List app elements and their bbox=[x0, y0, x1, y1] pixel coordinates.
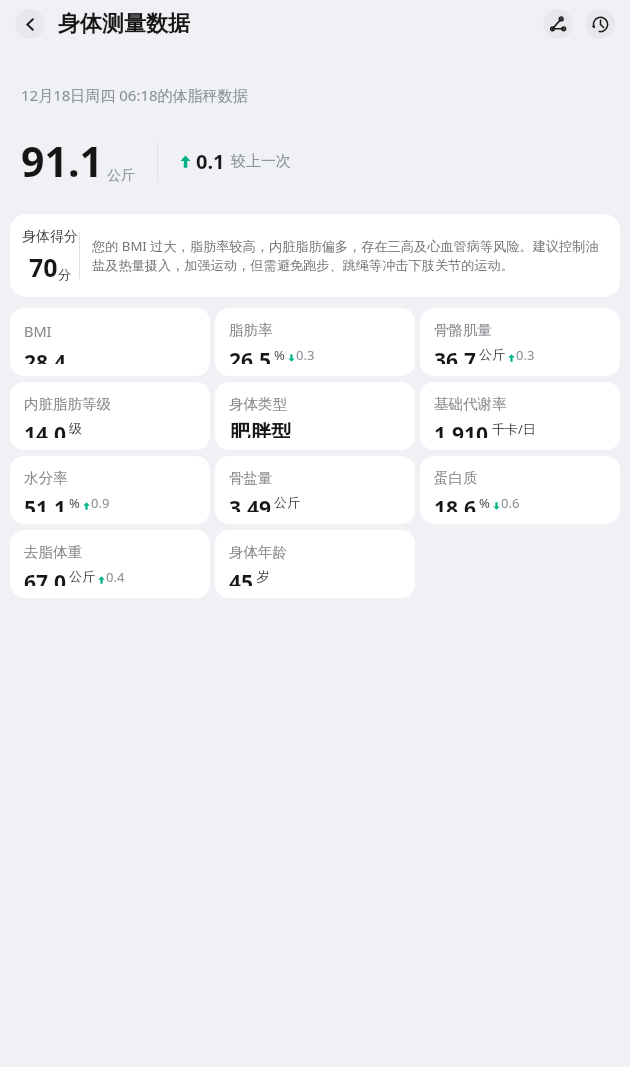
staticText: 分 bbox=[58, 266, 71, 282]
staticText: 基础代谢率 bbox=[434, 395, 507, 413]
staticText: 千卡/日 bbox=[492, 420, 536, 436]
staticText: 内脏脂肪等级 bbox=[24, 395, 111, 413]
button[interactable]: 水分率 bbox=[10, 456, 210, 524]
staticText: 3.49 bbox=[229, 494, 271, 512]
staticText: 1,910 bbox=[434, 420, 489, 438]
staticText: 91.1 bbox=[21, 133, 103, 189]
button[interactable]: 脂肪率 bbox=[215, 308, 415, 376]
staticText: 您的 BMI 过大，脂肪率较高，内脏脂肪偏多，存在三高及心血管病等风险。建议控制… bbox=[92, 237, 610, 274]
button[interactable]: Share bbox=[543, 9, 573, 39]
staticText: 骨骼肌量 bbox=[434, 321, 492, 339]
button[interactable]: 去脂体重 bbox=[10, 530, 210, 598]
button[interactable]: 身体得分 bbox=[10, 214, 620, 297]
staticText: 公斤 bbox=[479, 346, 505, 362]
button[interactable]: 骨盐量 bbox=[215, 456, 415, 524]
staticText: 级 bbox=[69, 420, 82, 436]
button[interactable]: 身体年龄 bbox=[215, 530, 415, 598]
staticText: 身体得分 bbox=[22, 228, 78, 246]
staticText: 身体年龄 bbox=[229, 543, 287, 561]
staticText: 蛋白质 bbox=[434, 469, 478, 487]
button[interactable]: 内脏脂肪等级 bbox=[10, 382, 210, 450]
staticText: 骨盐量 bbox=[229, 469, 273, 487]
staticText: 36.7 bbox=[434, 346, 476, 364]
staticText: BMI bbox=[24, 321, 52, 341]
button[interactable]: History bbox=[585, 9, 615, 39]
staticText: 水分率 bbox=[24, 469, 68, 487]
button[interactable]: BMI bbox=[10, 308, 210, 376]
button[interactable]: 蛋白质 bbox=[420, 456, 620, 524]
staticText: % bbox=[274, 346, 285, 362]
button[interactable]: 身体类型 bbox=[215, 382, 415, 450]
staticText: 0.3 bbox=[516, 346, 535, 362]
staticText: 身体类型 bbox=[229, 395, 287, 413]
staticText: 45 bbox=[229, 568, 254, 586]
button[interactable]: 骨骼肌量 bbox=[420, 308, 620, 376]
staticText: 公斤 bbox=[69, 568, 95, 584]
staticText: 0.6 bbox=[501, 494, 520, 510]
staticText: % bbox=[69, 494, 80, 510]
button[interactable]: 基础代谢率 bbox=[420, 382, 620, 450]
staticText: 肥胖型 bbox=[229, 420, 292, 438]
staticText: 0.3 bbox=[296, 346, 315, 362]
staticText: 26.5 bbox=[229, 346, 271, 364]
staticText: 较上一次 bbox=[231, 152, 291, 171]
staticText: 67.0 bbox=[24, 568, 66, 586]
staticText: 身体测量数据 bbox=[58, 10, 190, 38]
staticText: 公斤 bbox=[274, 494, 300, 510]
staticText: 公斤 bbox=[107, 167, 135, 185]
staticText: 脂肪率 bbox=[229, 321, 273, 339]
staticText: 0.9 bbox=[91, 494, 110, 510]
staticText: 0.1 bbox=[196, 148, 225, 175]
staticText: 岁 bbox=[257, 568, 270, 584]
staticText: 18.6 bbox=[434, 494, 476, 512]
staticText: 51.1 bbox=[24, 494, 66, 512]
staticText: 70 bbox=[29, 250, 58, 284]
staticText: 去脂体重 bbox=[24, 543, 82, 561]
staticText: 0.4 bbox=[106, 568, 125, 584]
staticText: % bbox=[479, 494, 490, 510]
button[interactable]: Back bbox=[15, 9, 45, 39]
staticText: 14.0 bbox=[24, 420, 66, 438]
staticText: 28.4 bbox=[24, 348, 66, 364]
staticText: 12月18日周四 06:18的体脂秤数据 bbox=[21, 85, 248, 105]
